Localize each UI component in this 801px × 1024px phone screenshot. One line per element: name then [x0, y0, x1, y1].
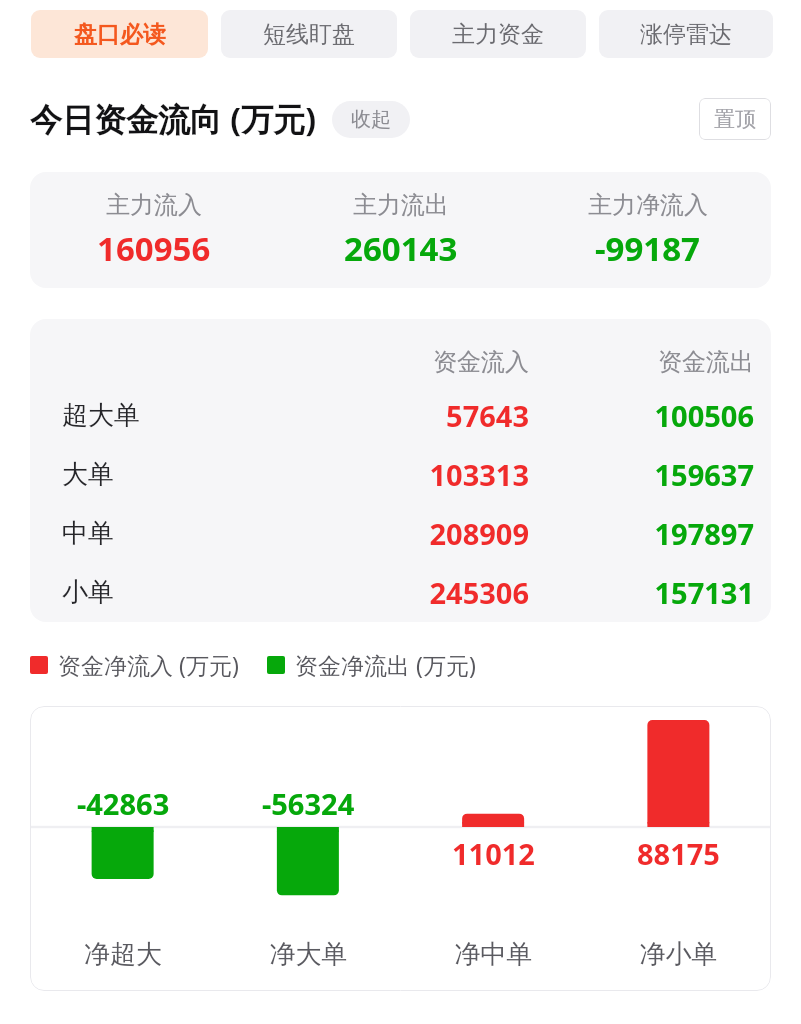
staticText: 197897 [584, 514, 754, 553]
staticText: 208909 [359, 514, 529, 553]
staticText: 置顶 [714, 106, 756, 132]
staticText: 资金净流入 (万元) [58, 649, 239, 680]
staticText: 主力净流入 [588, 190, 708, 220]
button[interactable]: 主力资金 [410, 10, 586, 58]
staticText: 159637 [584, 455, 754, 494]
staticText: 超大单 [62, 399, 359, 432]
staticText: 盘口必读 [74, 20, 166, 49]
staticText: 涨停雷达 [640, 20, 732, 49]
staticText: 净超大 [30, 938, 216, 971]
staticText: 11012 [452, 834, 535, 873]
staticText: 主力资金 [452, 20, 544, 49]
staticText: 资金流出 [584, 347, 754, 377]
staticText: 主力流出 [353, 190, 449, 220]
staticText: 103313 [359, 455, 529, 494]
staticText: 中单 [62, 517, 359, 550]
staticText: 资金流入 [359, 347, 529, 377]
staticText: -42863 [77, 784, 170, 823]
staticText: 收起 [351, 107, 391, 132]
button[interactable]: 收起 [332, 101, 410, 138]
staticText: -56324 [262, 784, 355, 823]
staticText: 净大单 [216, 938, 401, 971]
button[interactable]: 中单 [30, 504, 771, 563]
button[interactable]: 盘口必读 [31, 10, 208, 58]
staticText: 大单 [62, 458, 359, 491]
staticText: 245306 [359, 573, 529, 612]
staticText: 小单 [62, 576, 359, 609]
staticText: 160956 [97, 226, 211, 271]
button[interactable]: 小单 [30, 563, 771, 622]
staticText: 260143 [344, 226, 458, 271]
staticText: 资金净流出 (万元) [295, 649, 476, 680]
button[interactable]: 主力流入 [30, 190, 277, 271]
button[interactable]: 主力净流入 [524, 190, 771, 271]
button[interactable]: 短线盯盘 [221, 10, 397, 58]
staticText: 157131 [584, 573, 754, 612]
staticText: 88175 [637, 834, 720, 873]
other: Net fund flow bar chart [30, 706, 771, 991]
staticText: 净中单 [401, 938, 586, 971]
staticText: -99187 [595, 226, 700, 271]
button[interactable]: 涨停雷达 [599, 10, 773, 58]
button[interactable]: 超大单 [30, 386, 771, 445]
staticText: 净小单 [586, 938, 771, 971]
staticText: 57643 [359, 396, 529, 435]
button[interactable]: 置顶 [699, 98, 771, 140]
staticText: 主力流入 [106, 190, 202, 220]
staticText: 短线盯盘 [263, 20, 355, 49]
staticText: 100506 [584, 396, 754, 435]
button[interactable]: 大单 [30, 445, 771, 504]
button[interactable]: 主力流出 [277, 190, 524, 271]
staticText: 今日资金流向 (万元) [30, 97, 317, 141]
